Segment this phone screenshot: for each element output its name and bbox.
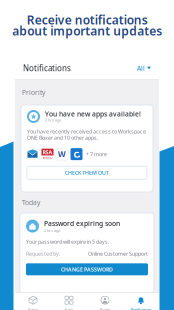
staticText: W (58, 149, 66, 159)
staticText: Home (27, 307, 38, 310)
staticText: You have recently received access to Wor… (27, 128, 146, 141)
staticText: Notifications (23, 63, 71, 73)
staticText: 2 hrs ago (45, 117, 61, 123)
staticText: Today (22, 198, 40, 207)
staticText: RSA (42, 149, 52, 156)
button[interactable]: People (87, 293, 123, 310)
staticText: You have new apps available! (45, 110, 141, 118)
button[interactable]: Apps (51, 293, 87, 310)
staticText: All (137, 64, 145, 73)
staticText: Your password will expire in 5 days. (26, 238, 109, 245)
button[interactable]: Notifications (123, 293, 159, 310)
staticText: Online Customer Support (88, 250, 148, 257)
staticText: Password expiring soon (44, 219, 120, 228)
staticText: People (99, 307, 110, 310)
staticText: Receive notifications about important up… (12, 12, 162, 39)
button[interactable]: CHANGE PASSWORD (26, 263, 148, 275)
staticText: CHANGE PASSWORD (61, 266, 113, 273)
button[interactable]: Home (15, 293, 51, 310)
staticText: + 7 more (86, 151, 107, 158)
button[interactable]: All (131, 59, 151, 78)
staticText: Requested by: (26, 250, 60, 257)
button[interactable]: CHECK THEM OUT (27, 166, 147, 179)
staticText: Priority (22, 88, 45, 97)
staticText: SecurID (42, 156, 52, 159)
staticText: C (73, 148, 79, 160)
staticText: 2 hrs ago (44, 228, 60, 233)
staticText: Notifications (130, 307, 151, 310)
staticText: Apps (64, 307, 73, 310)
staticText: CHECK THEM OUT (65, 169, 109, 176)
